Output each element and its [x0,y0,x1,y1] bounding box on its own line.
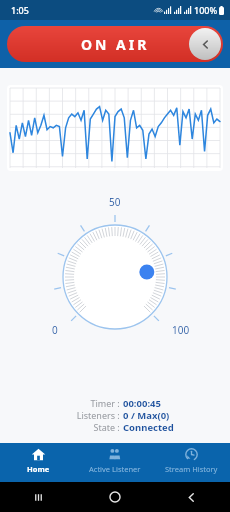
staticText: 00:00:45 [123,397,161,409]
staticText: : [115,421,123,433]
staticText: ON AIR [81,35,150,54]
staticText: Connected [123,421,174,433]
button[interactable]: Back [189,28,221,60]
staticText: Active Listener [89,464,141,474]
button[interactable]: Active Listener [76,443,153,482]
staticText: Stream History [165,464,218,474]
button[interactable]: ON AIR [7,26,223,62]
other: Recents [33,492,44,503]
button[interactable]: Home [0,443,76,482]
button[interactable]: Stream History [153,443,230,482]
staticText: : [115,397,123,409]
staticText: State [93,421,115,433]
staticText: 100% [194,4,218,16]
staticText: 1:05 [11,4,29,16]
staticText: 100 [172,323,190,337]
staticText: : [115,409,123,421]
staticText: 0 / Max(0) [123,409,170,421]
staticText: Listeners [76,409,115,421]
staticText: 0 [52,323,58,337]
staticText: Timer [90,397,115,409]
other: Back [186,492,197,503]
staticText: Home [27,464,50,474]
staticText: 50 [109,195,121,209]
other: Home [109,491,121,503]
